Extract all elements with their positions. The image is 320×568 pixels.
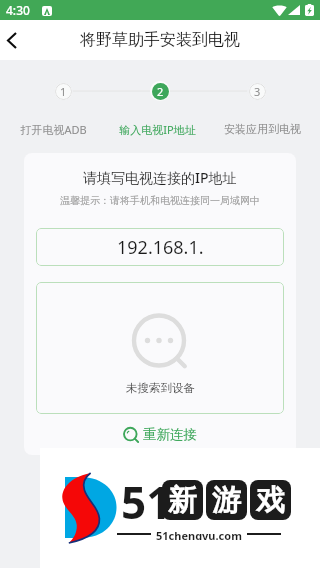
button[interactable]: 安装应用到电视: [210, 122, 315, 136]
staticText: 4:30: [6, 2, 30, 18]
staticText: 请填写电视连接的IP地址: [83, 168, 237, 187]
button[interactable]: 打开电视ADB: [1, 122, 105, 137]
staticText: 输入电视IP地址: [119, 122, 196, 137]
staticText: 192.168.1.: [117, 235, 204, 260]
staticText: 2: [157, 84, 164, 99]
staticText: 未搜索到设备: [126, 381, 195, 395]
staticText: 51: [121, 472, 172, 532]
button[interactable]: 192.168.1.: [36, 228, 284, 266]
button[interactable]: 重新连接: [117, 422, 203, 447]
staticText: 戏: [256, 482, 285, 519]
staticText: 3: [254, 84, 261, 99]
button[interactable]: 1: [53, 81, 73, 101]
staticText: 打开电视ADB: [20, 122, 87, 137]
staticText: 51chengyu.com: [156, 528, 242, 540]
button[interactable]: 输入电视IP地址: [105, 122, 210, 137]
staticText: 安装应用到电视: [224, 122, 301, 136]
staticText: 温馨提示：请将手机和电视连接同一局域网中: [60, 194, 260, 207]
staticText: 重新连接: [143, 426, 197, 443]
staticText: 游: [212, 482, 241, 519]
staticText: 新: [168, 482, 197, 519]
button[interactable]: 2: [150, 81, 170, 101]
staticText: 1: [60, 84, 67, 99]
staticText: 将野草助手安装到电视: [80, 30, 240, 50]
button[interactable]: 3: [247, 81, 267, 101]
button[interactable]: Back: [0, 20, 28, 60]
